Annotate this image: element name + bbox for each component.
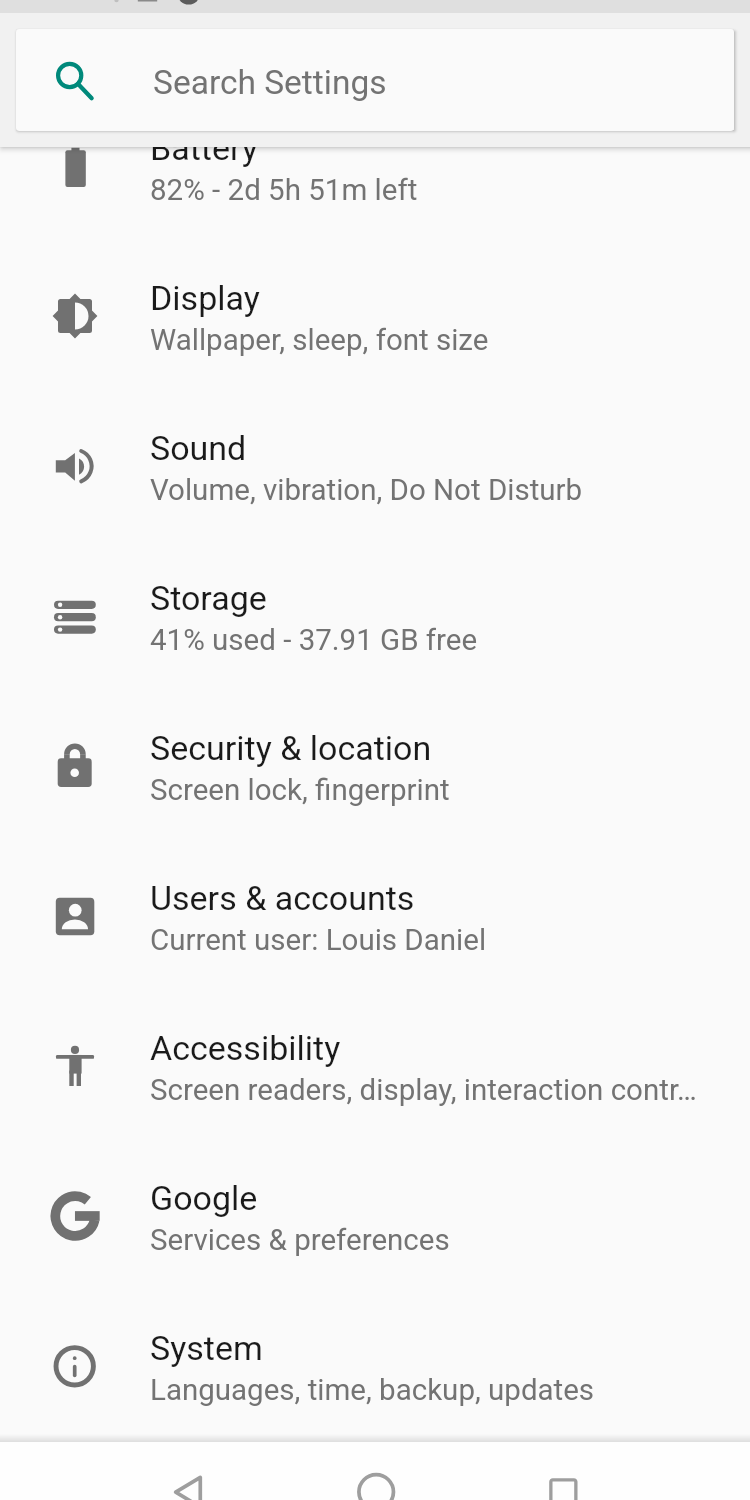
- staticText: Screen lock, fingerprint: [150, 773, 450, 808]
- button[interactable]: Search Settings: [16, 29, 734, 131]
- staticText: 82% - 2d 5h 51m left: [150, 173, 418, 208]
- button[interactable]: System: [0, 1291, 750, 1441]
- staticText: Storage: [150, 578, 267, 618]
- button[interactable]: Storage: [0, 541, 750, 691]
- button[interactable]: Battery: [0, 91, 750, 241]
- staticText: Languages, time, backup, updates: [150, 1373, 595, 1408]
- staticText: Volume, vibration, Do Not Disturb: [150, 473, 583, 508]
- staticText: Google: [150, 1178, 258, 1218]
- staticText: Sound: [150, 428, 247, 468]
- button[interactable]: Accessibility: [0, 991, 750, 1141]
- staticText: Accessibility: [150, 1028, 341, 1068]
- button[interactable]: Home: [313, 1442, 438, 1500]
- button[interactable]: Google: [0, 1141, 750, 1291]
- staticText: Display: [150, 278, 260, 318]
- button[interactable]: Display: [0, 241, 750, 391]
- staticText: Wallpaper, sleep, font size: [150, 323, 489, 358]
- staticText: Screen readers, display, interaction con…: [150, 1073, 697, 1108]
- button[interactable]: Back: [125, 1442, 250, 1500]
- staticText: System: [150, 1328, 263, 1368]
- button[interactable]: Recent apps: [500, 1442, 625, 1500]
- staticText: Users & accounts: [150, 878, 415, 918]
- button[interactable]: Security & location: [0, 691, 750, 841]
- button[interactable]: Sound: [0, 391, 750, 541]
- staticText: Services & preferences: [150, 1223, 450, 1258]
- staticText: Security & location: [150, 728, 432, 768]
- button[interactable]: Users & accounts: [0, 841, 750, 991]
- staticText: Battery: [150, 128, 258, 168]
- staticText: Current user: Louis Daniel: [150, 923, 487, 958]
- staticText: 41% used - 37.91 GB free: [150, 623, 478, 658]
- staticText: Search Settings: [153, 63, 387, 102]
